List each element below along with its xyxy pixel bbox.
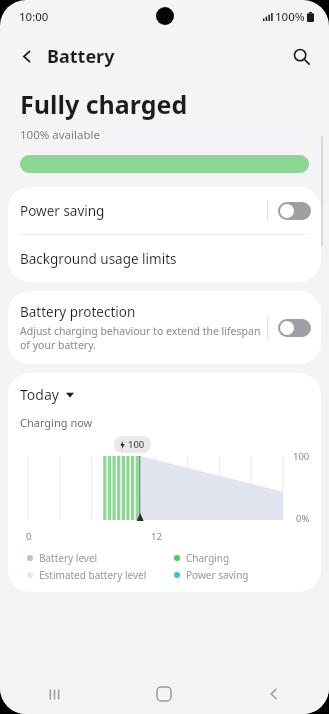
button[interactable]: Home bbox=[109, 674, 219, 714]
staticText: Estimated battery level bbox=[39, 568, 147, 582]
staticText: 100 bbox=[293, 450, 310, 463]
staticText: Fully charged bbox=[20, 87, 188, 121]
staticText: 100% available bbox=[20, 127, 100, 143]
button[interactable]: Back bbox=[219, 674, 329, 714]
staticText: Battery protection bbox=[20, 303, 136, 321]
staticText: Power saving bbox=[186, 568, 249, 582]
button[interactable]: Back bbox=[10, 39, 44, 73]
staticText: Battery bbox=[47, 44, 115, 69]
button[interactable]: Recent apps bbox=[0, 674, 109, 714]
staticText: Charging now bbox=[20, 415, 93, 430]
staticText: 10:00 bbox=[19, 9, 49, 25]
staticText: 0 bbox=[26, 530, 32, 543]
staticText: 12 bbox=[151, 530, 162, 543]
button[interactable]: Battery protection toggle bbox=[278, 319, 311, 337]
staticText: Power saving bbox=[20, 202, 267, 220]
staticText: 100% bbox=[275, 9, 305, 25]
staticText: 100 bbox=[128, 438, 145, 451]
staticText: Charging bbox=[186, 551, 230, 565]
button[interactable]: Background usage limits bbox=[8, 235, 321, 282]
button[interactable]: Today bbox=[20, 385, 74, 404]
staticText: Adjust charging behaviour to extend the … bbox=[20, 324, 261, 352]
button[interactable]: Power saving bbox=[8, 187, 321, 234]
button[interactable]: Power saving toggle bbox=[278, 202, 311, 220]
staticText: Battery level bbox=[39, 551, 98, 565]
staticText: Background usage limits bbox=[20, 250, 177, 268]
button[interactable]: Battery protection bbox=[8, 291, 321, 364]
staticText: Today bbox=[20, 385, 59, 404]
staticText: 0% bbox=[296, 512, 310, 525]
button[interactable]: Search bbox=[283, 38, 319, 74]
